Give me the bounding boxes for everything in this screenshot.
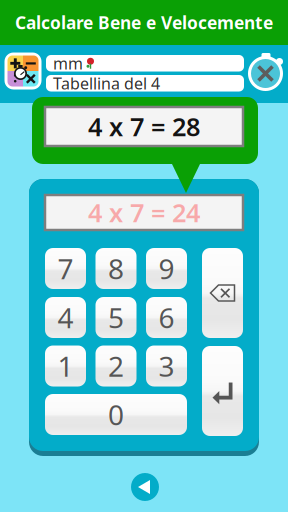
button[interactable]: App icon (4, 52, 41, 89)
button[interactable]: Delete (202, 248, 243, 338)
button[interactable]: 5 (95, 297, 136, 338)
staticText: 6 (158, 299, 174, 336)
button[interactable]: 0 (45, 394, 187, 435)
staticText: 9 (158, 250, 174, 287)
button[interactable]: 9 (146, 248, 187, 289)
staticText: 1 (57, 347, 73, 385)
button[interactable]: 3 (146, 345, 187, 386)
staticText: 4 (57, 299, 73, 336)
button[interactable]: Back (130, 472, 160, 502)
staticText: Calcolare Bene e Velocemente (15, 11, 273, 34)
staticText: 4 x 7 = 28 (88, 110, 200, 143)
button[interactable]: 1 (45, 345, 86, 386)
button[interactable]: 7 (45, 248, 86, 289)
button[interactable]: 8 (95, 248, 136, 289)
button[interactable]: 6 (146, 297, 187, 338)
staticText: 8 (108, 250, 124, 287)
staticText: 7 (57, 250, 73, 287)
staticText: 5 (108, 299, 124, 336)
staticText: Tabellina del 4 (53, 73, 160, 94)
button[interactable]: Enter (202, 346, 243, 436)
button[interactable]: Stop timer (248, 52, 284, 92)
staticText: mm (53, 53, 83, 74)
button[interactable]: 4 (45, 297, 86, 338)
staticText: 3 (158, 347, 174, 385)
button[interactable]: 2 (95, 345, 136, 386)
staticText: 2 (108, 347, 124, 385)
staticText: 4 x 7 = 24 (88, 196, 200, 229)
staticText: 0 (108, 396, 124, 433)
